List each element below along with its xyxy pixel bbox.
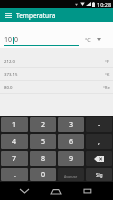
staticText: 1 xyxy=(12,120,17,130)
button[interactable]: 5 xyxy=(30,134,56,149)
staticText: 80.0 xyxy=(4,84,13,90)
staticText: 0 xyxy=(14,35,19,45)
button[interactable]: 4 xyxy=(1,134,28,149)
button[interactable]: 8 xyxy=(30,151,56,166)
staticText: 7 xyxy=(12,154,17,164)
staticText: . xyxy=(14,170,16,180)
button[interactable]: 212.0 xyxy=(0,55,113,67)
button[interactable]: . xyxy=(1,168,28,181)
staticText: , xyxy=(98,137,100,147)
staticText: 212.0 xyxy=(4,58,15,64)
staticText: 2 xyxy=(41,120,46,130)
staticText: 8 xyxy=(41,154,46,164)
button[interactable]: 3 xyxy=(58,117,84,132)
button[interactable]: 6 xyxy=(58,134,84,149)
button[interactable]: 80.0 xyxy=(0,81,113,93)
staticText: °F xyxy=(105,58,110,64)
staticText: 10 xyxy=(4,35,13,45)
button[interactable]: 0 xyxy=(30,168,56,181)
staticText: 4 xyxy=(12,137,17,147)
staticText: °C xyxy=(85,36,91,43)
staticText: Sig xyxy=(96,172,103,178)
button[interactable]: - xyxy=(86,117,112,132)
staticText: 373.15 xyxy=(4,71,18,77)
staticText: 9 xyxy=(69,154,74,164)
button[interactable]: 9 xyxy=(58,151,84,166)
button[interactable]: Sig xyxy=(86,168,112,181)
staticText: - xyxy=(98,120,101,130)
button[interactable]: 373.15 xyxy=(0,68,113,80)
button[interactable]: 7 xyxy=(1,151,28,166)
button[interactable]: Open navigation drawer xyxy=(0,8,16,22)
button[interactable]: Space xyxy=(58,168,84,181)
staticText: Temperatura xyxy=(16,11,56,20)
staticText: °Re xyxy=(103,84,110,90)
button[interactable]: Home xyxy=(42,182,70,200)
button[interactable]: Select unit, degrees Celsius xyxy=(85,34,111,44)
staticText: 5 xyxy=(41,137,46,147)
staticText: 3 xyxy=(69,120,74,130)
button[interactable]: Delete xyxy=(86,151,112,166)
button[interactable]: , xyxy=(86,134,112,149)
staticText: 6 xyxy=(69,137,74,147)
button[interactable]: 1 xyxy=(1,117,28,132)
staticText: 10:28 xyxy=(97,1,112,8)
button[interactable]: 2 xyxy=(30,117,56,132)
staticText: 0 xyxy=(41,170,46,180)
staticText: °K xyxy=(105,71,110,77)
staticText: Avanzar xyxy=(64,174,78,179)
button[interactable]: Hide keyboard xyxy=(10,182,38,200)
button[interactable]: Recent apps xyxy=(74,182,102,200)
